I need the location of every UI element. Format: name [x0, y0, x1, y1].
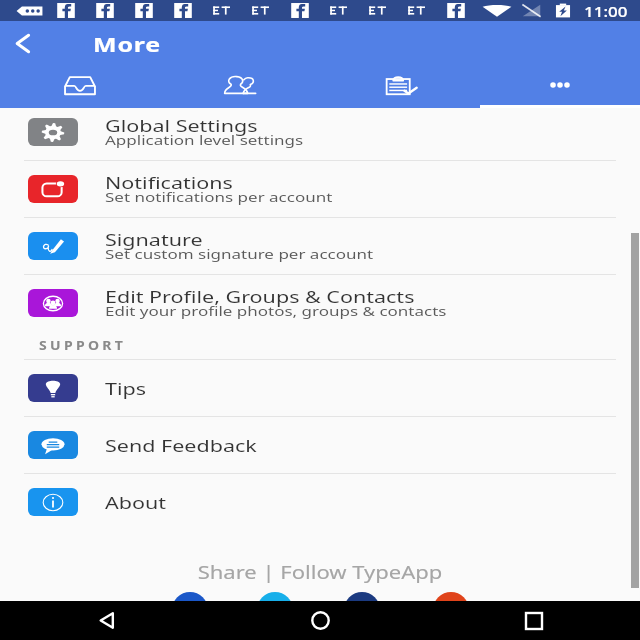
button[interactable] [172, 592, 208, 628]
button[interactable]: Send Feedback [0, 417, 640, 473]
staticText: Send Feedback [105, 435, 257, 456]
staticText: Set custom signature per account [105, 246, 374, 263]
button[interactable]: Back [0, 601, 214, 640]
button[interactable]: Edit Profile, Groups & Contacts [0, 275, 640, 331]
staticText: Application level settings [105, 132, 304, 149]
button[interactable]: Global Settings [0, 104, 640, 160]
staticText: Edit Profile, Groups & Contacts [105, 286, 415, 307]
staticText: Global Settings [105, 115, 258, 136]
staticText: Edit your profile photos, groups & conta… [105, 303, 447, 320]
staticText: Share | Follow TypeApp [0, 560, 640, 584]
staticText: Set notifications per account [105, 189, 333, 206]
button[interactable] [433, 592, 469, 628]
staticText: Signature [105, 229, 203, 250]
button[interactable]: Back [0, 21, 44, 66]
button[interactable]: Notifications [0, 161, 640, 217]
button[interactable]: Contacts [160, 66, 320, 108]
button[interactable]: Home [214, 601, 427, 640]
button[interactable]: About [0, 474, 640, 530]
button[interactable]: More [480, 66, 640, 108]
button[interactable]: Tips [0, 360, 640, 416]
staticText: SUPPORT [39, 337, 127, 354]
button[interactable]: Tasks [320, 66, 480, 108]
button[interactable]: Signature [0, 218, 640, 274]
button[interactable] [344, 592, 380, 628]
staticText: About [105, 492, 167, 513]
button[interactable]: Recents [427, 601, 640, 640]
staticText: More [93, 31, 162, 57]
button[interactable]: Inbox [0, 66, 160, 108]
staticText: Tips [105, 378, 147, 399]
staticText: 11:00 [584, 2, 628, 19]
button[interactable] [257, 592, 293, 628]
staticText: Notifications [105, 172, 233, 193]
